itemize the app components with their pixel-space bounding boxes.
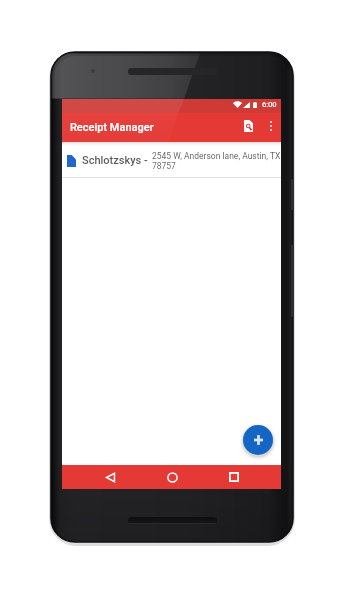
- button[interactable]: Home: [141, 465, 203, 489]
- staticText: 78757: [152, 161, 176, 171]
- staticText: 6:00: [262, 100, 277, 109]
- button[interactable]: More options: [262, 113, 280, 139]
- button[interactable]: Search receipts: [235, 113, 262, 139]
- button[interactable]: Back: [79, 465, 141, 489]
- staticText: Receipt Manager: [70, 121, 154, 134]
- button[interactable]: Recent apps: [203, 465, 265, 489]
- staticText: 2545 W, Anderson lane, Austin, TX: [152, 151, 281, 161]
- button[interactable]: Add receipt: [243, 425, 273, 455]
- button[interactable]: Schlotzskys -: [62, 142, 281, 178]
- staticText: Schlotzskys -: [82, 154, 151, 167]
